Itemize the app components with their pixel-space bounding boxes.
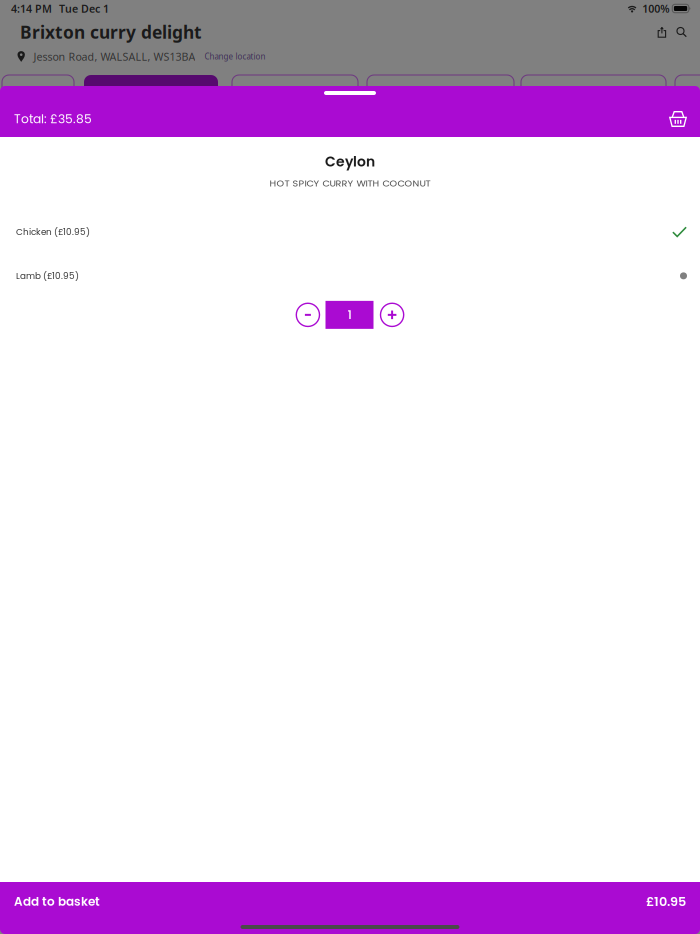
button[interactable]: Change location xyxy=(204,51,265,62)
button[interactable]: Menu category xyxy=(2,75,74,101)
button[interactable]: Share xyxy=(658,26,666,38)
button[interactable]: Basket xyxy=(669,111,687,127)
button[interactable]: Lamb (£10.95) xyxy=(0,254,700,298)
staticText: 1 xyxy=(347,306,351,324)
staticText: Jesson Road, WALSALL, WS13BA xyxy=(33,49,195,64)
button[interactable]: Increase quantity xyxy=(380,303,404,326)
staticText: 100% xyxy=(642,1,669,16)
staticText: Total: £35.85 xyxy=(14,110,92,128)
staticText: £10.95 xyxy=(646,892,686,910)
button[interactable]: Menu category xyxy=(84,75,218,101)
staticText: 4:14 PM xyxy=(11,1,52,16)
staticText: Brixton curry delight xyxy=(20,20,202,43)
button[interactable]: Search xyxy=(676,27,687,37)
button[interactable]: Menu category xyxy=(675,75,700,101)
button[interactable]: Menu category xyxy=(232,75,358,101)
staticText: Tue Dec 1 xyxy=(59,1,109,16)
button[interactable]: Menu category xyxy=(367,75,514,101)
staticText: Ceylon xyxy=(325,152,375,171)
staticText: Add to basket xyxy=(14,893,100,910)
staticText: Chicken (£10.95) xyxy=(16,226,90,238)
staticText: Change location xyxy=(204,51,265,62)
staticText: HOT SPICY CURRY WITH COCONUT xyxy=(269,176,430,190)
button[interactable]: Menu category xyxy=(521,75,666,101)
button[interactable]: Chicken (£10.95) xyxy=(0,210,700,254)
staticText: Lamb (£10.95) xyxy=(16,270,79,282)
button[interactable]: Add to basket xyxy=(0,882,700,934)
button[interactable]: Decrease quantity xyxy=(296,303,319,326)
